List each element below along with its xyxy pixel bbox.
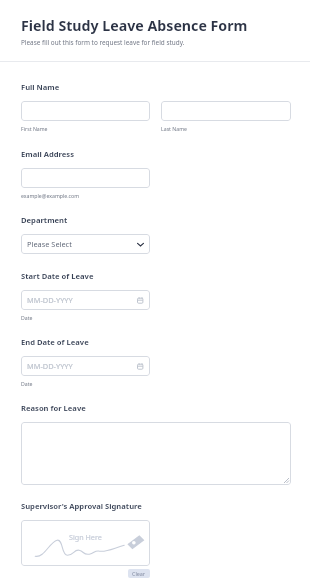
button[interactable]	[21, 101, 150, 121]
button[interactable]: MM-DD-YYYY	[21, 290, 150, 310]
staticText: First Name	[21, 125, 48, 132]
staticText: Department	[21, 215, 68, 225]
staticText: Clear	[132, 570, 146, 577]
button[interactable]	[161, 101, 291, 121]
staticText: example@example.com	[21, 192, 80, 199]
button[interactable]	[21, 168, 150, 188]
staticText: Email Address	[21, 149, 74, 159]
staticText: Sign Here	[69, 532, 102, 542]
staticText: Last Name	[161, 125, 187, 132]
button[interactable]: Open calendar	[137, 297, 144, 304]
button[interactable]	[21, 422, 291, 485]
button[interactable]: MM-DD-YYYY	[21, 356, 150, 376]
button[interactable]: Clear	[128, 569, 150, 578]
staticText: Start Date of Leave	[21, 271, 94, 281]
button[interactable]: Signature pad, sign here	[21, 520, 150, 566]
staticText: Date	[21, 380, 33, 387]
staticText: MM-DD-YYYY	[27, 295, 73, 305]
staticText: Please Select	[27, 239, 72, 249]
staticText: Please fill out this form to request lea…	[21, 38, 185, 47]
staticText: MM-DD-YYYY	[27, 361, 73, 371]
staticText: Date	[21, 314, 33, 321]
staticText: Full Name	[21, 82, 60, 92]
staticText: End Date of Leave	[21, 337, 89, 347]
button[interactable]: Please Select	[21, 234, 150, 254]
staticText: Field Study Leave Absence Form	[21, 16, 248, 35]
staticText: Reason for Leave	[21, 403, 86, 413]
button[interactable]: Open calendar	[137, 363, 144, 370]
staticText: Supervisor's Approval Signature	[21, 501, 142, 511]
